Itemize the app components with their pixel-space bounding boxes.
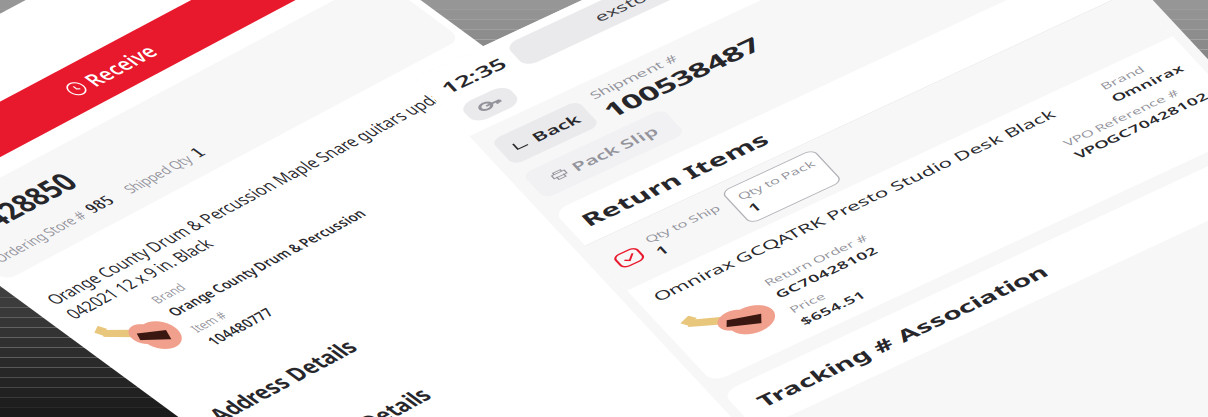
staticText: exstore-qa.guitarcenter.com	[552, 95, 764, 116]
staticText: Ship	[832, 195, 866, 216]
staticText: 12:35	[425, 92, 475, 119]
button[interactable]: Receive	[0, 205, 335, 254]
staticText: Shipment #	[507, 180, 578, 198]
staticText: 100538487	[507, 198, 633, 232]
button[interactable]: Ship	[805, 186, 875, 225]
staticText: Receive	[38, 216, 114, 243]
button[interactable]: Documents	[843, 243, 875, 275]
staticText: Orange County Drum & Percussion Maple Sn…	[0, 392, 284, 417]
